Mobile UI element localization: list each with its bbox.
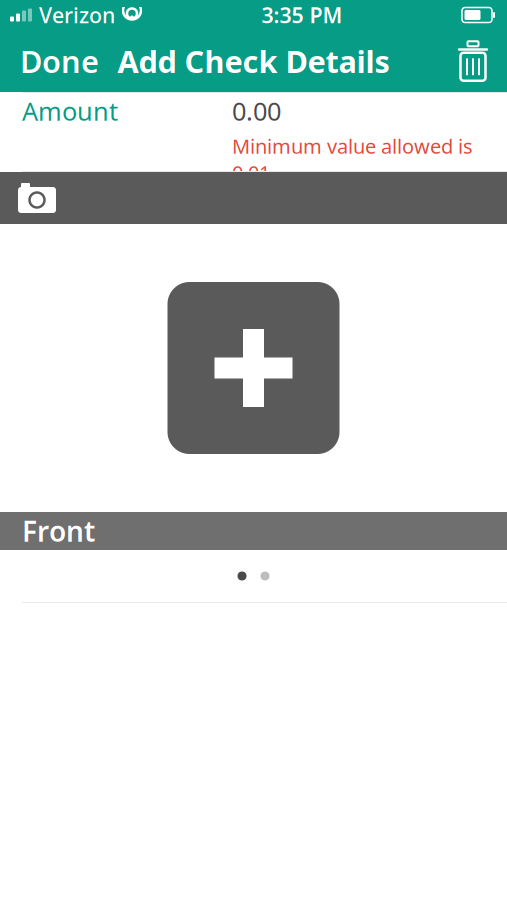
button[interactable]: Amount: [0, 93, 507, 171]
staticText: Amount: [22, 94, 118, 128]
staticText: Verizon: [39, 1, 115, 29]
staticText: Add Check Details: [117, 41, 389, 81]
button[interactable]: Add check image: [167, 282, 339, 454]
button[interactable]: Delete: [439, 30, 507, 92]
button[interactable]: Take photo: [0, 172, 507, 224]
staticText: Done: [20, 41, 99, 81]
staticText: 0.00: [232, 94, 281, 128]
staticText: Minimum value allowed is 0.01: [232, 133, 473, 186]
button[interactable]: Done: [0, 30, 119, 92]
staticText: Front: [22, 512, 95, 550]
staticText: 3:35 PM: [261, 1, 342, 29]
